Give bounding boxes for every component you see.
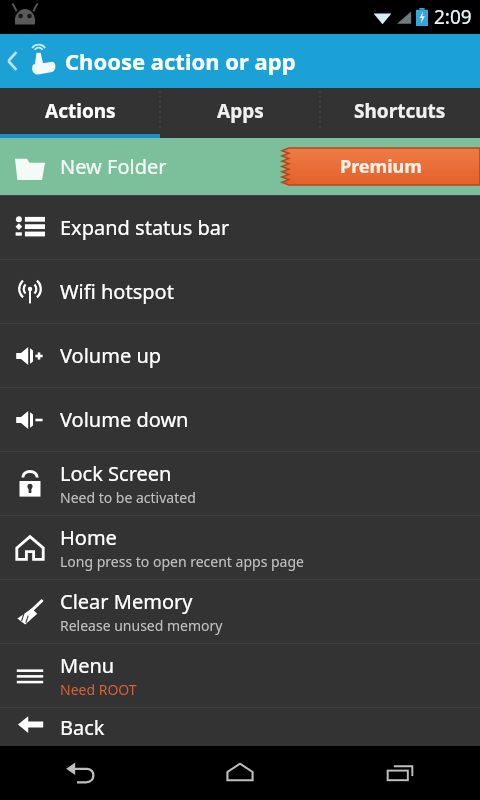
staticText: Volume down bbox=[60, 406, 189, 433]
staticText: Shortcuts bbox=[354, 98, 446, 124]
staticText: 2:09 bbox=[434, 4, 472, 30]
staticText: New Folder bbox=[60, 153, 167, 180]
button[interactable]: New Folder bbox=[0, 138, 480, 195]
button[interactable]: Expand status bar bbox=[0, 196, 480, 259]
staticText: Wifi hotspot bbox=[60, 278, 174, 305]
button[interactable]: Clear Memory bbox=[0, 580, 480, 643]
button[interactable]: Menu bbox=[0, 644, 480, 707]
button[interactable]: Home bbox=[160, 746, 320, 800]
button[interactable]: Actions bbox=[0, 88, 160, 134]
staticText: Volume up bbox=[60, 342, 162, 369]
button[interactable]: Lock Screen bbox=[0, 452, 480, 515]
staticText: Home bbox=[60, 524, 117, 551]
staticText: Lock Screen bbox=[60, 460, 172, 487]
button[interactable]: Apps bbox=[160, 88, 320, 134]
staticText: Release unused memory bbox=[60, 616, 223, 635]
button[interactable]: Wifi hotspot bbox=[0, 260, 480, 323]
button[interactable]: Home bbox=[0, 516, 480, 579]
staticText: Choose action or app bbox=[65, 46, 296, 76]
staticText: Actions bbox=[45, 98, 116, 124]
staticText: Expand status bar bbox=[60, 214, 230, 241]
staticText: Need ROOT bbox=[60, 680, 137, 699]
staticText: Long press to open recent apps page bbox=[60, 552, 304, 571]
staticText: Clear Memory bbox=[60, 588, 193, 615]
button[interactable]: Shortcuts bbox=[320, 88, 480, 134]
button[interactable]: Recent apps bbox=[320, 746, 480, 800]
button[interactable]: Back bbox=[0, 708, 480, 746]
button[interactable]: Back bbox=[0, 746, 160, 800]
button[interactable]: Volume down bbox=[0, 388, 480, 451]
staticText: Apps bbox=[217, 98, 264, 124]
button[interactable]: Navigate up bbox=[0, 34, 59, 88]
staticText: Premium bbox=[340, 154, 422, 179]
staticText: Back bbox=[60, 714, 105, 741]
staticText: Need to be activated bbox=[60, 488, 196, 507]
staticText: Menu bbox=[60, 652, 115, 679]
button[interactable]: Volume up bbox=[0, 324, 480, 387]
